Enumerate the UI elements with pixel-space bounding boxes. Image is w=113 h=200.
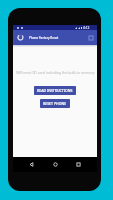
staticText: Phone Factory Reset — [29, 36, 59, 40]
button[interactable]: Recent apps — [73, 159, 84, 170]
button[interactable]: RESET PHONE — [40, 99, 70, 108]
button[interactable]: More options — [87, 34, 95, 42]
button[interactable]: READ INSTRUCTIONS — [34, 86, 76, 95]
staticText: RESET PHONE — [43, 101, 67, 106]
staticText: 4:12 — [83, 26, 90, 30]
staticText: Will reset SD card including the built-i… — [16, 70, 95, 75]
button[interactable]: Home — [50, 159, 61, 170]
button[interactable]: Back — [26, 159, 37, 170]
staticText: READ INSTRUCTIONS — [37, 88, 73, 93]
